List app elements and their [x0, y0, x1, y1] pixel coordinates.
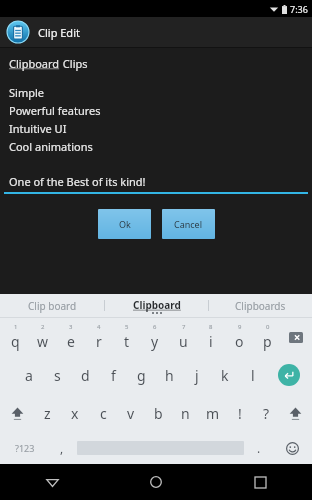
staticText: 4 — [97, 323, 101, 331]
staticText: 3 — [69, 323, 73, 331]
button[interactable]: n — [172, 394, 199, 432]
button[interactable]: c — [89, 394, 117, 432]
staticText: k — [221, 366, 229, 385]
staticText: ? — [263, 404, 270, 423]
button[interactable]: a — [15, 356, 43, 394]
staticText: t — [124, 332, 130, 351]
staticText: f — [111, 366, 116, 385]
button[interactable]: Clipboard — [105, 294, 208, 317]
staticText: 8 — [209, 323, 213, 331]
button[interactable]: g — [127, 356, 155, 394]
staticText: ! — [238, 404, 242, 423]
button[interactable]: Home — [104, 464, 208, 500]
button[interactable]: d — [71, 356, 99, 394]
staticText: n — [181, 404, 190, 423]
button[interactable]: z — [33, 394, 61, 432]
button[interactable]: Enter — [267, 356, 310, 394]
staticText: Clipboards — [235, 299, 286, 313]
staticText: j — [195, 366, 199, 385]
staticText: a — [25, 366, 33, 385]
staticText: Clipboard — [133, 298, 181, 312]
staticText: Clip Edit — [38, 25, 80, 40]
staticText: Intuitive UI — [9, 121, 67, 136]
staticText: Powerful features — [9, 103, 101, 118]
button[interactable]: Clip board — [0, 294, 104, 317]
button[interactable]: 8 — [197, 318, 225, 356]
staticText: 7 — [182, 323, 186, 331]
button[interactable]: 4 — [85, 318, 113, 356]
staticText: Cancel — [174, 218, 203, 230]
staticText: r — [96, 332, 102, 351]
staticText: 7:36 — [290, 3, 308, 15]
staticText: Clipboard — [9, 56, 60, 71]
staticText: 2 — [41, 323, 45, 331]
button[interactable]: Recents — [208, 464, 312, 500]
button[interactable]: f — [99, 356, 127, 394]
button[interactable]: s — [43, 356, 71, 394]
button[interactable]: 5 — [113, 318, 141, 356]
staticText: Cool animations — [9, 139, 93, 154]
staticText: h — [165, 366, 174, 385]
staticText: Clip board — [28, 299, 77, 313]
button[interactable]: Back — [0, 464, 104, 500]
staticText: l — [251, 366, 255, 385]
staticText: m — [206, 404, 220, 423]
staticText: w — [37, 332, 49, 351]
staticText: y — [151, 332, 159, 351]
button[interactable]: l — [239, 356, 267, 394]
staticText: e — [67, 332, 75, 351]
staticText: 9 — [238, 323, 242, 331]
button[interactable]: Shift — [2, 394, 33, 432]
button[interactable]: h — [155, 356, 183, 394]
button[interactable]: 6 — [141, 318, 169, 356]
staticText: p — [263, 332, 272, 351]
button[interactable]: ?123 — [2, 432, 47, 464]
button[interactable]: 3 — [57, 318, 85, 356]
button[interactable]: Backspace — [281, 318, 310, 356]
staticText: d — [81, 366, 90, 385]
button[interactable]: One of the Best of its kind! — [4, 174, 308, 194]
button[interactable]: Emoji — [274, 432, 310, 464]
staticText: , — [60, 440, 64, 456]
button[interactable]: 2 — [29, 318, 57, 356]
staticText: ?123 — [15, 442, 35, 454]
button[interactable]: 7 — [169, 318, 197, 356]
staticText: q — [11, 332, 20, 351]
button[interactable]: v — [117, 394, 145, 432]
staticText: 5 — [125, 323, 129, 331]
button[interactable]: ! — [226, 394, 253, 432]
staticText: z — [44, 404, 51, 423]
button[interactable]: Shift — [280, 394, 310, 432]
staticText: 0 — [266, 323, 270, 331]
staticText: Simple — [9, 85, 44, 100]
staticText: c — [100, 404, 107, 423]
button[interactable]: Cancel — [162, 209, 215, 239]
button[interactable]: x — [61, 394, 89, 432]
staticText: 6 — [153, 323, 157, 331]
button[interactable]: , — [47, 432, 77, 464]
button[interactable]: 9 — [225, 318, 253, 356]
staticText: s — [54, 366, 61, 385]
staticText: u — [179, 332, 188, 351]
staticText: Clips — [60, 56, 88, 71]
button[interactable]: 0 — [253, 318, 281, 356]
staticText: One of the Best of its kind! — [9, 174, 146, 189]
staticText: o — [235, 332, 244, 351]
button[interactable]: 1 — [2, 318, 29, 356]
staticText: 1 — [14, 323, 18, 331]
staticText: i — [209, 332, 213, 351]
button[interactable]: . — [244, 432, 274, 464]
staticText: g — [137, 366, 146, 385]
staticText: . — [257, 440, 261, 456]
button[interactable]: Ok — [98, 209, 151, 239]
button[interactable]: k — [211, 356, 239, 394]
button[interactable]: b — [145, 394, 172, 432]
staticText: v — [127, 404, 135, 423]
button[interactable]: j — [183, 356, 211, 394]
button[interactable]: Clipboards — [209, 294, 312, 317]
button[interactable]: ? — [253, 394, 280, 432]
staticText: Ok — [119, 218, 131, 230]
button[interactable]: m — [199, 394, 226, 432]
staticText: b — [154, 404, 163, 423]
